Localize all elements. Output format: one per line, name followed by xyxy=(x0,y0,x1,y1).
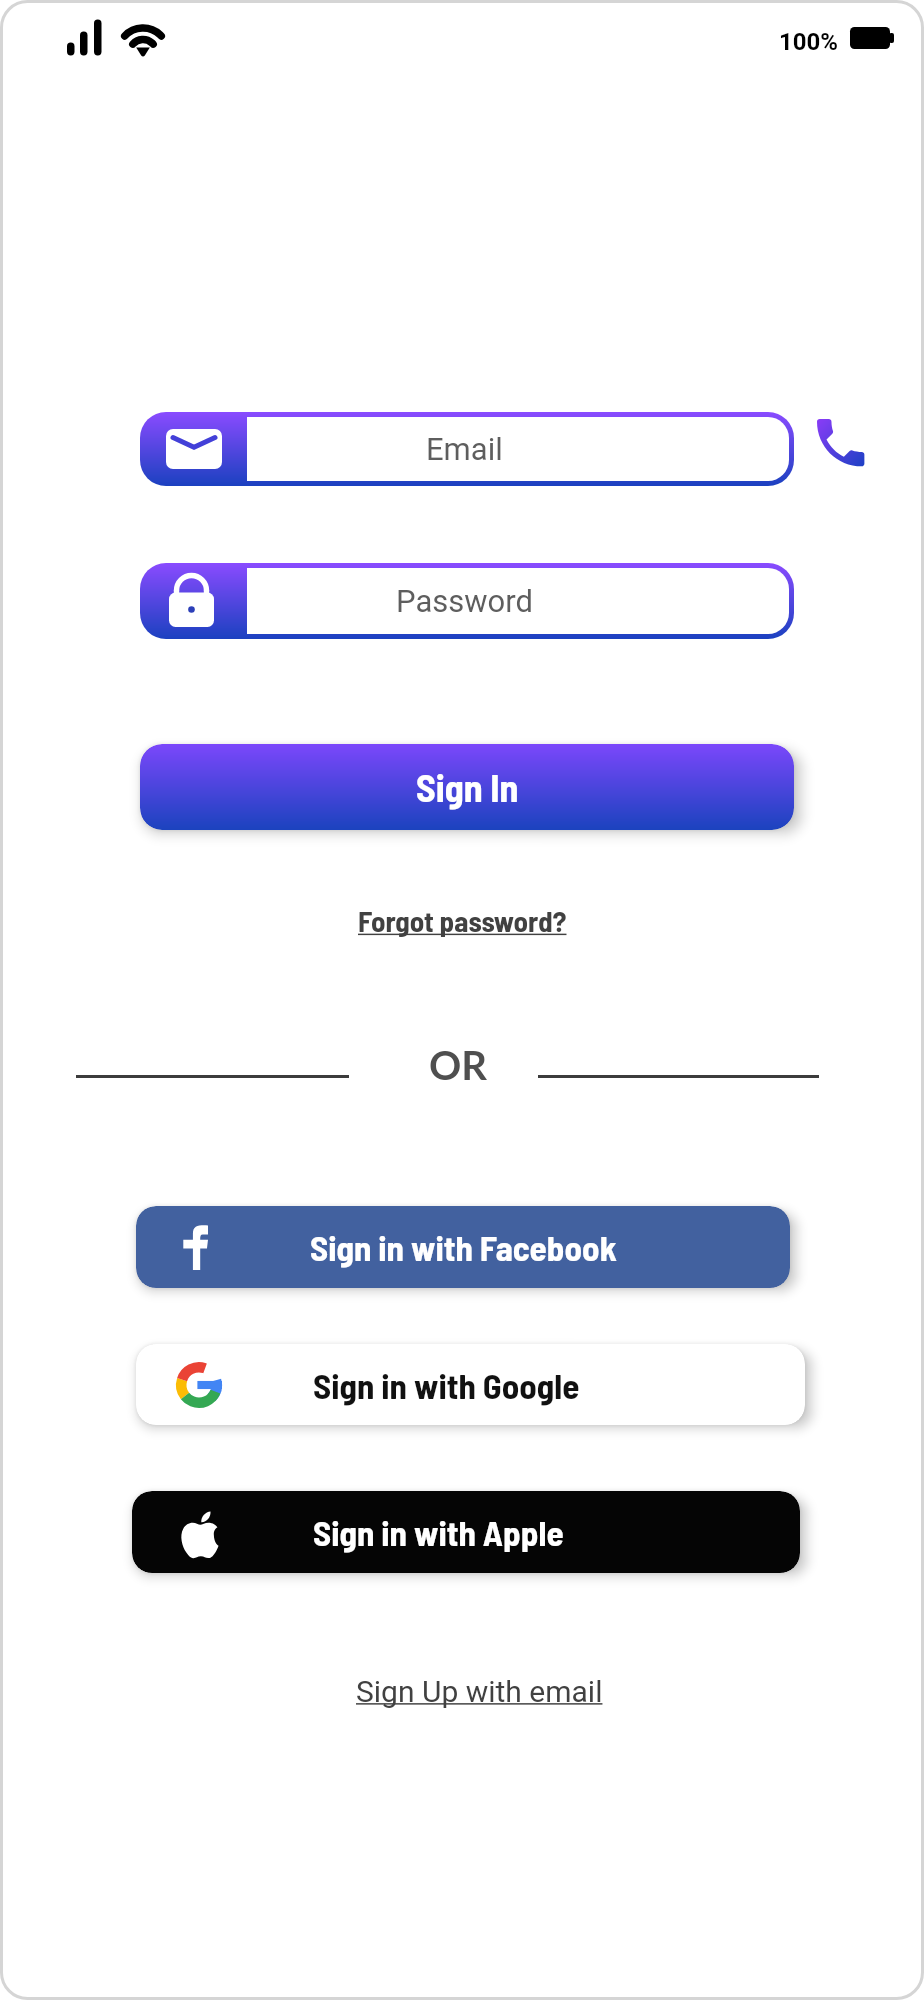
button[interactable]: Sign in with phone xyxy=(817,419,867,469)
button[interactable]: Sign in with Apple xyxy=(132,1491,800,1573)
staticText: Password xyxy=(396,583,533,619)
button[interactable]: Sign In xyxy=(140,744,794,830)
staticText: Sign in with Facebook xyxy=(310,1226,617,1268)
button[interactable]: Forgot password? xyxy=(348,897,577,944)
button[interactable]: Password xyxy=(140,563,794,639)
staticText: Forgot password? xyxy=(358,903,567,938)
staticText: 100% xyxy=(779,28,839,56)
staticText: Sign In xyxy=(416,764,519,810)
staticText: Sign in with Google xyxy=(313,1364,580,1406)
staticText: Sign in with Apple xyxy=(313,1511,564,1553)
button[interactable]: Sign in with Facebook xyxy=(136,1206,790,1288)
staticText: Email xyxy=(426,431,503,467)
button[interactable]: Email xyxy=(140,412,794,486)
button[interactable]: Sign Up with email xyxy=(346,1668,613,1715)
button[interactable]: Sign in with Google xyxy=(136,1344,805,1425)
staticText: OR xyxy=(429,1041,488,1089)
staticText: Sign Up with email xyxy=(356,1674,603,1709)
